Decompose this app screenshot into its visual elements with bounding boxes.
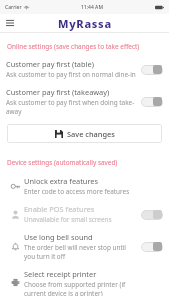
staticText: Carrier	[5, 4, 22, 11]
button[interactable]: Toggle setting	[141, 64, 163, 75]
staticText: Enter code to access more features	[24, 187, 130, 196]
button[interactable]: Save changes	[7, 124, 162, 143]
button[interactable]: Toggle setting	[141, 241, 163, 252]
staticText: Choose from supported printer (if curren…	[24, 280, 137, 296]
staticText: Unavailable for small screens	[24, 215, 112, 224]
staticText: Customer pay first (takeaway)	[6, 87, 110, 97]
staticText: Device settings (automatically saved)	[7, 158, 118, 167]
button[interactable]: Open navigation menu	[3, 16, 17, 30]
button[interactable]: Customer pay first (takeaway)	[0, 83, 169, 120]
staticText: MyRassa	[58, 16, 112, 31]
staticText: Ask customer to pay first on normal dine…	[6, 70, 136, 79]
button[interactable]: Enable POS features	[0, 200, 169, 228]
button[interactable]: Unlock extra features	[0, 172, 169, 200]
staticText: Online settings (save changes to take ef…	[7, 42, 140, 51]
button[interactable]: Customer pay first (table)	[0, 55, 169, 83]
staticText: Enable POS features	[24, 204, 95, 214]
button[interactable]: Use long bell sound	[0, 228, 169, 265]
button[interactable]: Toggle setting	[141, 96, 163, 107]
staticText: Ask customer to pay first when doing tak…	[6, 98, 137, 116]
staticText: The order bell will never stop until you…	[24, 243, 137, 261]
staticText: Unlock extra features	[24, 176, 99, 186]
staticText: Customer pay first (table)	[6, 59, 94, 69]
staticText: Save changes	[67, 129, 115, 139]
button[interactable]: Toggle setting	[141, 209, 163, 220]
staticText: 11:44 AM	[81, 4, 103, 11]
button[interactable]: Select receipt printer	[0, 265, 169, 300]
staticText: Select receipt printer	[24, 269, 97, 279]
staticText: Use long bell sound	[24, 232, 93, 242]
